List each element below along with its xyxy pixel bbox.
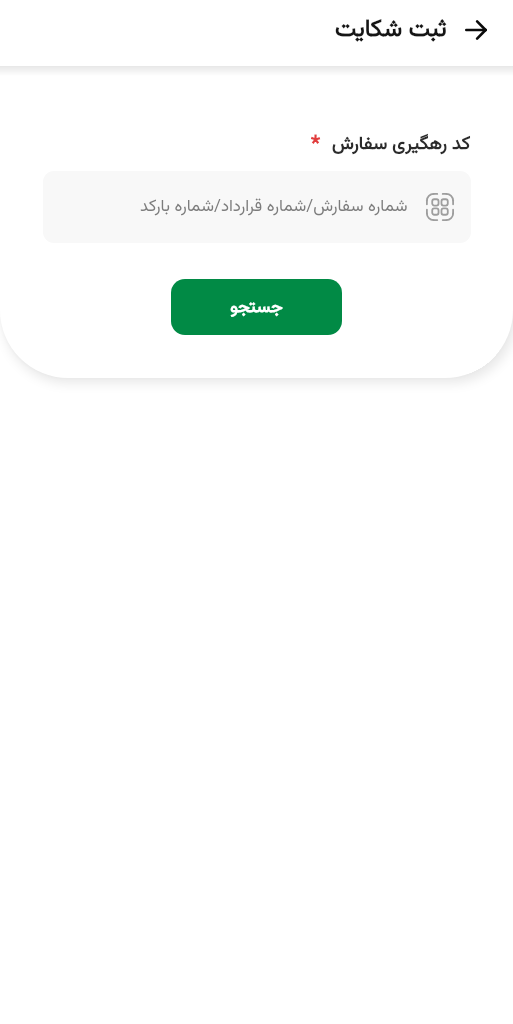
button[interactable]: شماره سفارش/شماره قرارداد/شماره بارکد [43,171,471,243]
staticText: کد رهگیری سفارش [332,130,471,159]
button[interactable]: Scan barcode [425,192,455,222]
staticText: ثبت شکایت [335,11,447,49]
staticText: جستجو [230,294,283,321]
staticText: * [311,128,321,160]
staticText: شماره سفارش/شماره قرارداد/شماره بارکد [140,194,408,220]
button[interactable]: جستجو [171,279,342,335]
button[interactable]: Back [461,15,491,45]
